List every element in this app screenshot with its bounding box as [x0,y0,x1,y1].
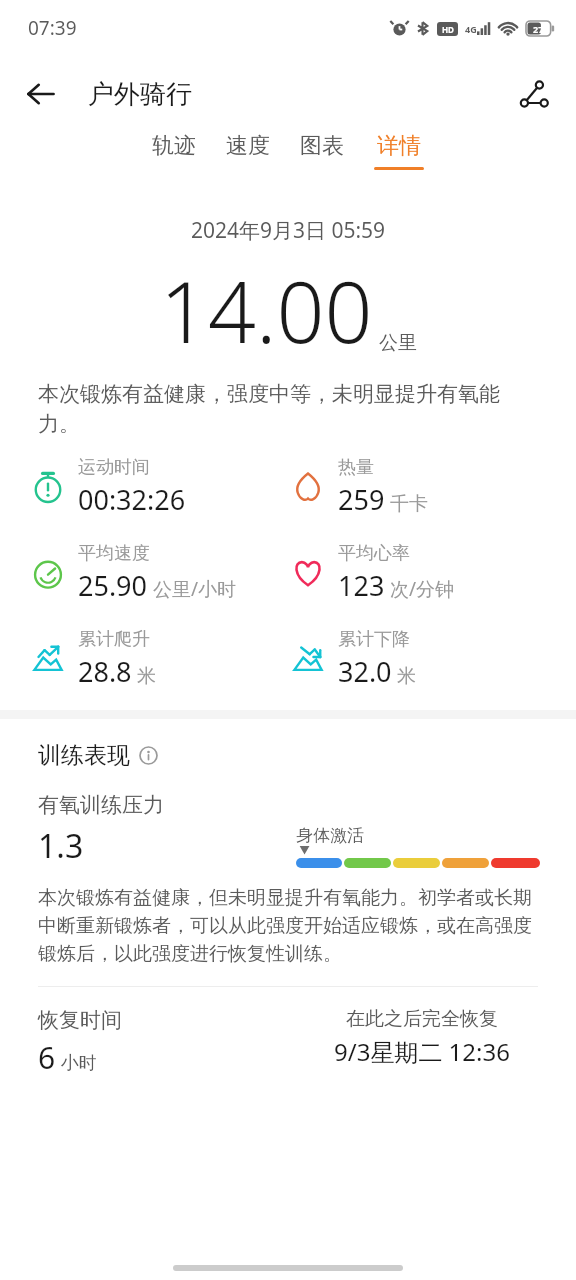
staticText: 25.90 [78,567,148,604]
staticText: 在此之后完全恢复 [346,1007,498,1031]
button[interactable]: 速度 [226,132,270,167]
button[interactable]: 运动时间 [28,456,288,518]
staticText: 有氧训练压力 [38,792,164,818]
staticText: 公里/小时 [148,576,237,602]
staticText: 详情 [377,132,421,160]
staticText: 2024年9月3日 05:59 [0,216,576,245]
staticText: 14.00 [160,253,373,367]
staticText: 9/3星期二 12:36 [334,1035,510,1068]
staticText: 累计爬升 [78,628,150,651]
other: Info [139,746,158,765]
button[interactable]: 累计爬升 [28,628,288,690]
staticText: 6 [38,1037,56,1078]
button[interactable]: 累计下降 [288,628,576,690]
staticText: 1.3 [38,824,84,868]
staticText: HD [442,24,454,35]
staticText: 本次锻炼有益健康，但未明显提升有氧能力。初学者或长期中断重新锻炼者，可以从此强度… [38,886,538,966]
button[interactable]: 平均速度 [28,542,288,604]
staticText: 27 [533,23,544,35]
staticText: 07:39 [28,15,77,41]
staticText: 图表 [300,132,344,160]
staticText: 热量 [338,456,374,479]
staticText: 千卡 [385,490,428,516]
button[interactable]: 热量 [288,456,576,518]
staticText: 259 [338,481,385,518]
staticText: 4G [465,23,477,35]
staticText: 轨迹 [152,132,196,160]
staticText: 米 [392,662,416,688]
staticText: 次/分钟 [385,576,455,602]
staticText: 运动时间 [78,456,150,479]
staticText: 32.0 [338,653,392,690]
button[interactable]: 训练表现 [38,741,158,770]
staticText: 米 [132,662,156,688]
staticText: 本次锻炼有益健康，强度中等，未明显提升有氧能力。 [38,381,538,438]
button[interactable]: 轨迹 [152,132,196,167]
button[interactable]: Back [18,71,64,117]
staticText: 训练表现 [38,741,130,770]
button[interactable]: 平均心率 [288,542,576,604]
staticText: 123 [338,567,385,604]
staticText: 恢复时间 [38,1007,122,1033]
staticText: 公里 [379,331,417,355]
staticText: 身体激活 [296,825,364,846]
staticText: 平均速度 [78,542,150,565]
button[interactable]: 图表 [300,132,344,167]
staticText: 00:32:26 [78,481,186,518]
staticText: 户外骑行 [88,78,192,111]
staticText: 平均心率 [338,542,410,565]
button[interactable]: Share [510,70,558,118]
staticText: 累计下降 [338,628,410,651]
staticText: 小时 [56,1050,97,1075]
button[interactable]: 详情 [374,132,424,170]
staticText: 速度 [226,132,270,160]
staticText: 28.8 [78,653,132,690]
